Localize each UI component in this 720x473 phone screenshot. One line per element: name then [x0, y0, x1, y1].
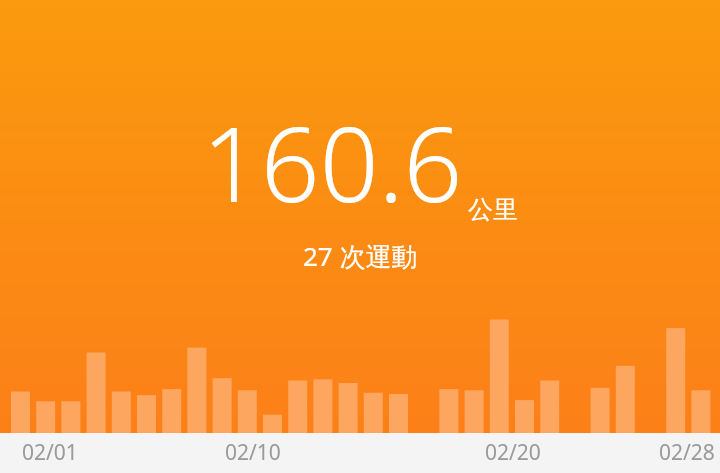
button[interactable]: 02/01: [0, 433, 720, 473]
staticText: 02/10: [225, 438, 281, 467]
staticText: 公里: [468, 194, 518, 225]
staticText: 02/28: [659, 438, 715, 467]
staticText: 27 次運動: [303, 238, 418, 274]
staticText: 02/01: [22, 438, 78, 467]
button[interactable]: 160.6: [0, 92, 720, 274]
staticText: 02/20: [485, 438, 541, 467]
staticText: 160.6: [202, 92, 463, 232]
button[interactable]: Monthly distance summary: [0, 0, 720, 473]
